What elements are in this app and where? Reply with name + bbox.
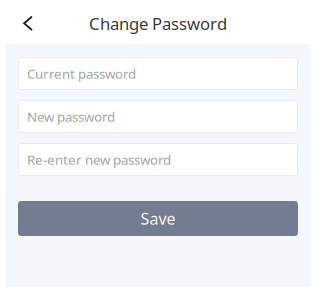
staticText: Save (140, 208, 175, 229)
staticText: Re-enter new password (27, 150, 171, 169)
staticText: Current password (27, 64, 136, 83)
staticText: Change Password (89, 12, 227, 35)
staticText: New password (27, 107, 115, 126)
button[interactable]: Save (18, 201, 298, 236)
button[interactable]: Back (0, 0, 33, 45)
